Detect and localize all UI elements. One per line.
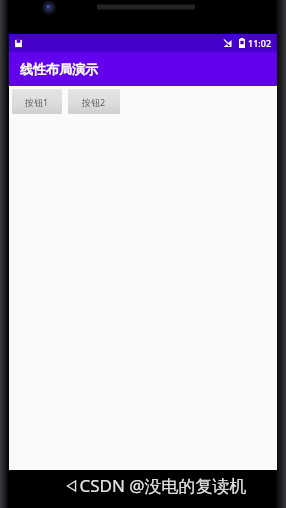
staticText: CSDN @没电的复读机 (79, 474, 247, 497)
staticText: 线性布局演示 (20, 61, 98, 77)
staticText: 11:02 (248, 37, 272, 49)
button[interactable]: 按钮1 (12, 89, 62, 114)
button[interactable]: 按钮2 (68, 89, 120, 114)
staticText: 按钮1 (25, 96, 49, 108)
staticText: 按钮2 (82, 96, 106, 108)
